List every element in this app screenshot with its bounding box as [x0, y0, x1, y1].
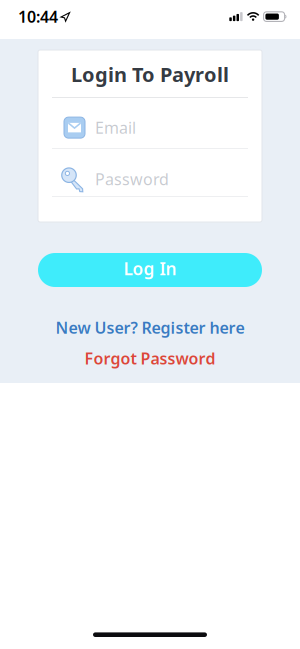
- staticText: 10:44: [18, 6, 58, 27]
- staticText: Password: [95, 168, 169, 190]
- staticText: Forgot Password: [84, 348, 215, 369]
- button[interactable]: New User? Register here: [55, 317, 244, 338]
- staticText: New User? Register here: [55, 317, 244, 338]
- button[interactable]: Forgot Password: [84, 348, 215, 369]
- staticText: Login To Payroll: [71, 61, 229, 88]
- staticText: Email: [95, 117, 136, 138]
- button[interactable]: Log In: [38, 253, 262, 287]
- staticText: Log In: [123, 257, 176, 280]
